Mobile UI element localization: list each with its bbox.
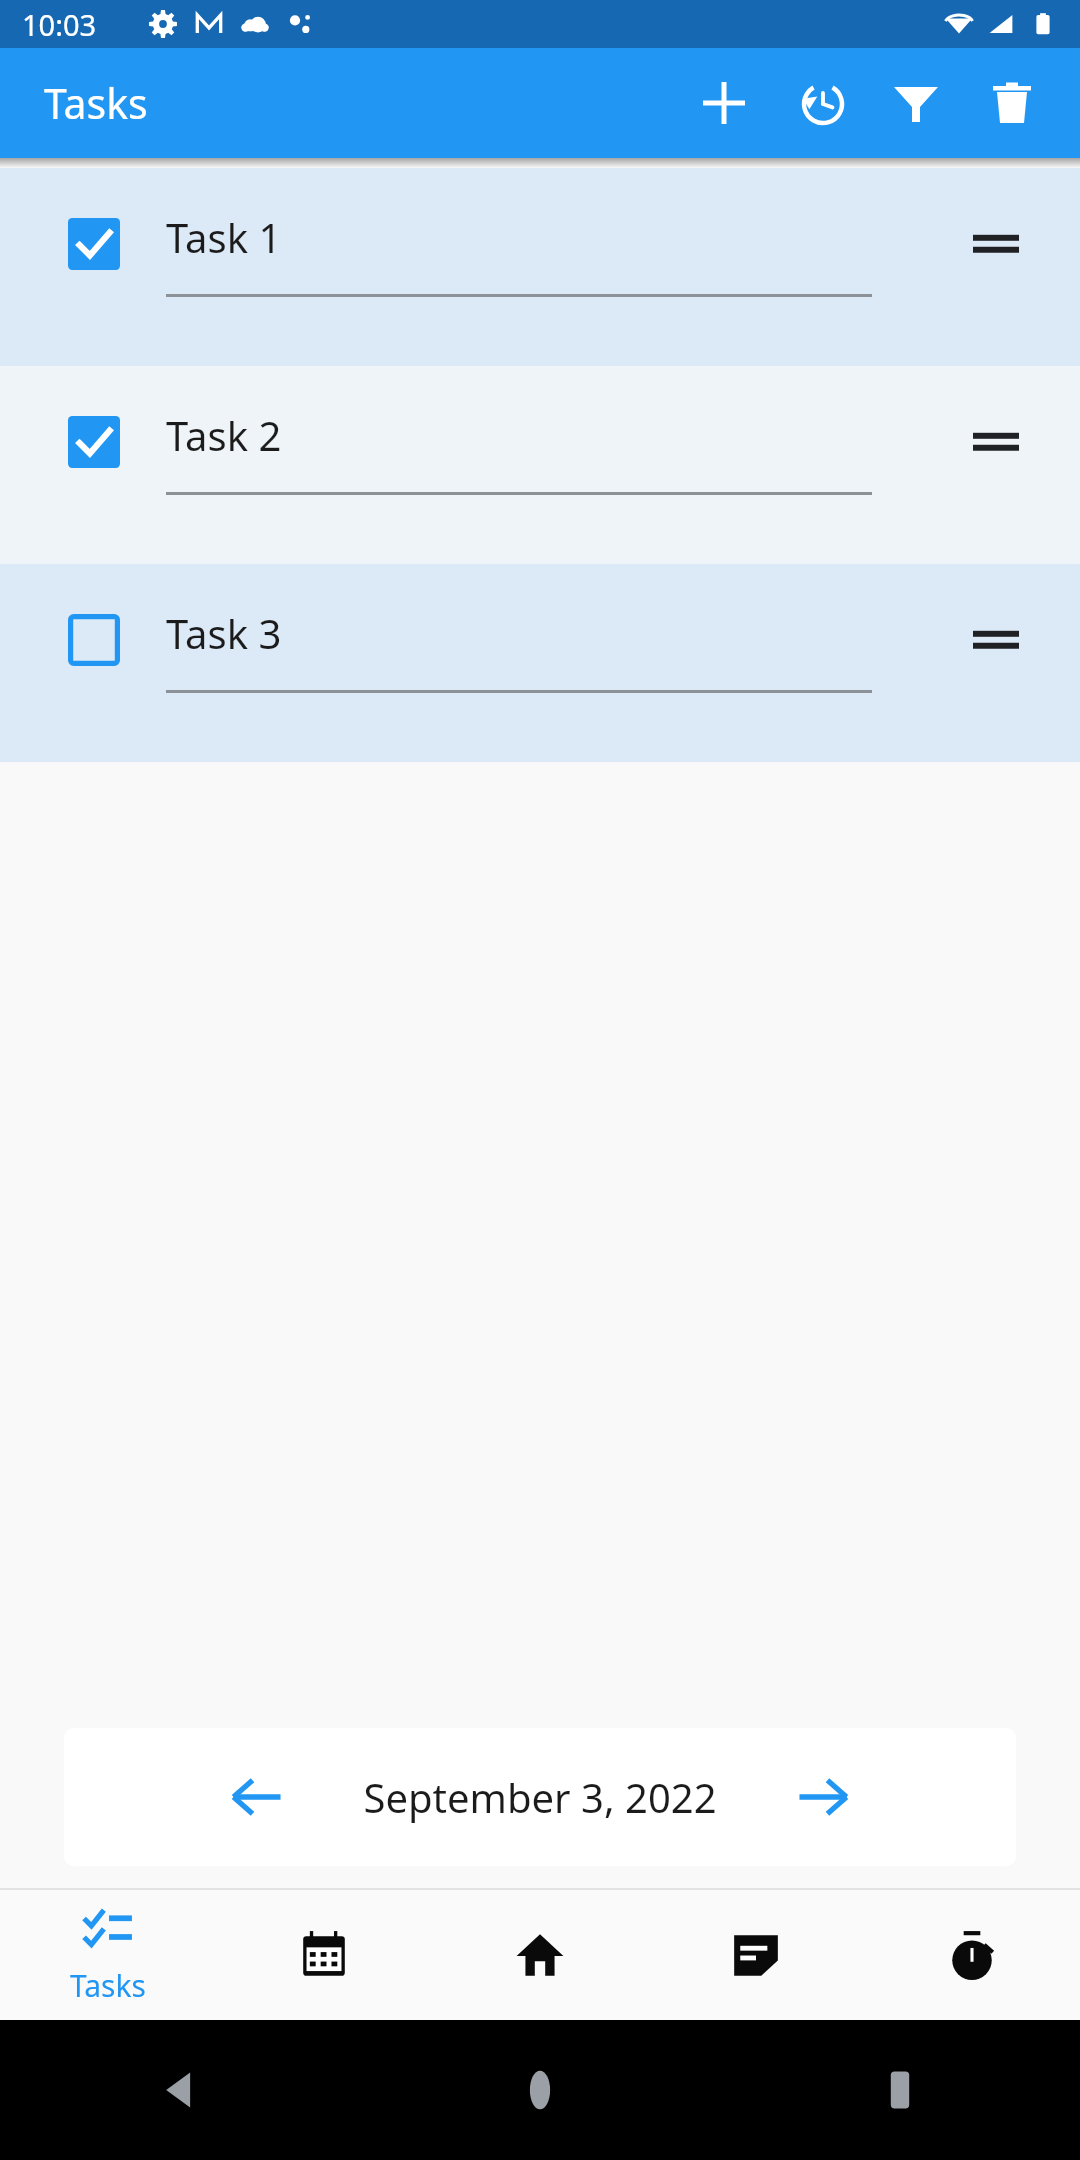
button[interactable]: Toggle Task 3	[66, 612, 121, 667]
button[interactable]: Reorder Task 3	[956, 600, 1036, 680]
button[interactable]: Previous day	[64, 1728, 1016, 1866]
staticText: Task 3	[166, 606, 282, 660]
staticText: Task 1	[166, 210, 282, 264]
button[interactable]: History	[772, 55, 868, 151]
button[interactable]: Filter	[868, 55, 964, 151]
button[interactable]: Recent apps	[720, 2020, 1080, 2160]
button[interactable]: Timer	[864, 1890, 1080, 2020]
staticText: Tasks	[44, 75, 148, 131]
button[interactable]: Add	[676, 55, 772, 151]
button[interactable]: Toggle Task 1	[0, 168, 1080, 366]
button[interactable]: Next day	[780, 1754, 866, 1840]
button[interactable]: Back	[0, 2020, 360, 2160]
staticText: Task 2	[166, 408, 282, 462]
staticText: 10:03	[22, 5, 97, 44]
staticText: September 3, 2022	[363, 1770, 717, 1824]
button[interactable]: Notes	[648, 1890, 864, 2020]
button[interactable]: Tasks	[0, 1890, 216, 2020]
button[interactable]: Reorder Task 2	[956, 402, 1036, 482]
button[interactable]: Home	[432, 1890, 648, 2020]
staticText: Tasks	[70, 1965, 146, 2006]
button[interactable]: Home	[360, 2020, 720, 2160]
button[interactable]: Toggle Task 2	[0, 366, 1080, 564]
button[interactable]: Calendar	[216, 1890, 432, 2020]
button[interactable]: Previous day	[214, 1754, 300, 1840]
button[interactable]: Toggle Task 3	[0, 564, 1080, 762]
button[interactable]: Reorder Task 1	[956, 204, 1036, 284]
button[interactable]: Toggle Task 2	[66, 414, 121, 469]
button[interactable]: Delete	[964, 55, 1060, 151]
button[interactable]: Toggle Task 1	[66, 216, 121, 271]
